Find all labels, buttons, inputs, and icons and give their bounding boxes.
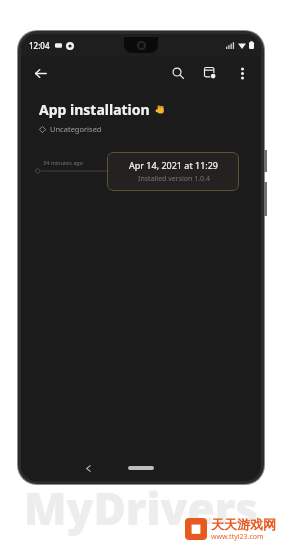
staticText: Installed version 1.0.4 (138, 174, 210, 184)
staticText: www.ttyl23.com (211, 532, 264, 542)
button[interactable]: Home (128, 466, 154, 470)
button[interactable]: Apr 14, 2021 at 11:29 (107, 152, 239, 191)
button[interactable]: Back (79, 459, 97, 477)
button[interactable]: Calendar (195, 58, 225, 88)
button[interactable]: More options (227, 58, 257, 88)
staticText: Uncategorised (50, 124, 102, 134)
staticText: Apr 14, 2021 at 11:29 (129, 159, 218, 171)
staticText: App installation (39, 100, 150, 119)
button[interactable]: Back (25, 58, 55, 88)
staticText: 34 minutes ago (43, 159, 84, 166)
staticText: 12:04 (29, 40, 50, 51)
staticText: 天天游戏网 (211, 516, 276, 532)
button[interactable]: Search (163, 58, 193, 88)
staticText: MyDrivers (24, 478, 259, 538)
